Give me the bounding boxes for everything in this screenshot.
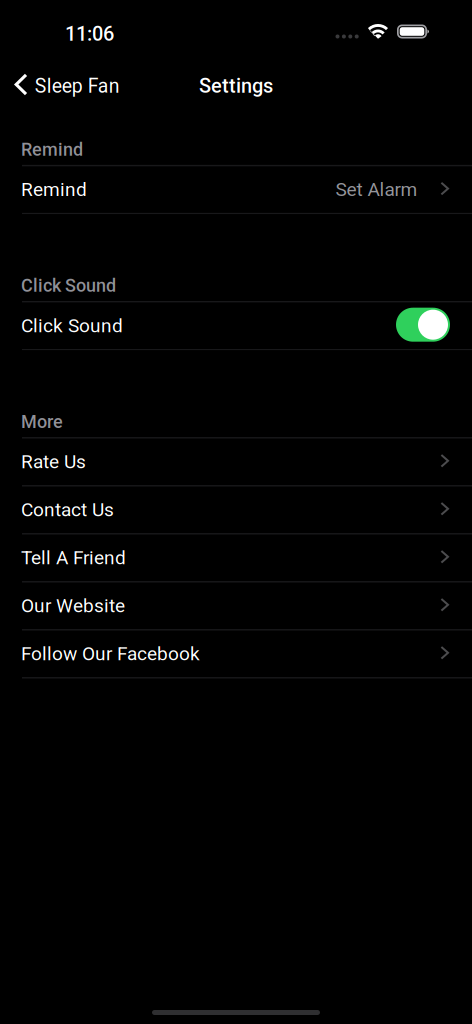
staticText: Set Alarm bbox=[335, 178, 417, 201]
button[interactable]: Remind bbox=[0, 166, 472, 214]
staticText: Remind bbox=[21, 178, 87, 201]
staticText: More bbox=[21, 411, 63, 432]
staticText: Tell A Friend bbox=[21, 547, 126, 569]
staticText: Click Sound bbox=[21, 314, 123, 337]
staticText: Settings bbox=[199, 74, 273, 98]
staticText: 11:06 bbox=[65, 22, 114, 46]
staticText: Click Sound bbox=[21, 275, 116, 296]
staticText: Contact Us bbox=[21, 499, 114, 521]
staticText: Our Website bbox=[21, 595, 125, 617]
button[interactable]: Our Website bbox=[0, 582, 472, 630]
button[interactable]: Sleep Fan bbox=[0, 64, 130, 108]
staticText: Follow Our Facebook bbox=[21, 643, 200, 665]
button[interactable]: Tell A Friend bbox=[0, 534, 472, 582]
staticText: Sleep Fan bbox=[35, 75, 120, 97]
staticText: Rate Us bbox=[21, 451, 86, 473]
button[interactable]: Contact Us bbox=[0, 486, 472, 534]
button[interactable]: Click Sound bbox=[0, 302, 472, 350]
button[interactable]: Follow Our Facebook bbox=[0, 630, 472, 678]
button[interactable]: Rate Us bbox=[0, 438, 472, 486]
staticText: Remind bbox=[21, 139, 83, 160]
